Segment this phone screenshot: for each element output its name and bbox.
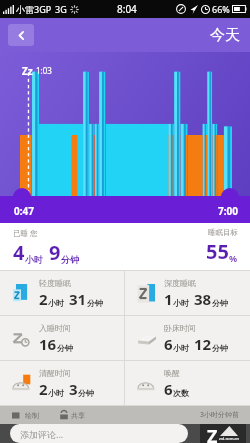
staticText: 12 [194,334,212,354]
staticText: 已睡 您 [13,228,38,238]
staticText: 小时 [48,388,64,398]
staticText: 1:03 [36,65,52,76]
staticText: 睡眠目标 [208,228,238,237]
staticText: 38 [194,289,212,309]
staticText: 分钟 [57,343,73,353]
staticText: 分钟 [61,254,79,265]
staticText: 添加评论... [20,428,64,440]
staticText: 次数 [173,388,189,398]
staticText: 卧床时间 [164,323,196,333]
button[interactable]: 添加评论... [10,424,188,443]
button[interactable]: 卧床时间 [125,316,250,360]
staticText: 16 [39,334,57,354]
staticText: 1 [164,289,173,309]
staticText: 31 [69,289,87,309]
staticText: 9 [49,239,61,266]
staticText: 8:04 [117,2,137,16]
button[interactable]: 清醒时间 [0,361,124,405]
staticText: 3 [69,379,78,399]
staticText: 小时 [25,254,43,265]
staticText: 2 [39,379,48,399]
staticText: 分钟 [212,298,228,308]
staticText: 分钟 [212,343,228,353]
staticText: 小时 [173,343,189,353]
staticText: 绘制 [25,411,39,420]
staticText: 清醒时间 [39,368,71,378]
staticText: 分钟 [78,388,94,398]
button[interactable]: 轻度睡眠 [0,271,124,315]
staticText: 4 [13,239,25,266]
staticText: 小雷3GP [16,3,52,15]
staticText: 0:47 [14,204,34,218]
staticText: 6 [164,334,173,354]
staticText: 小时 [48,298,64,308]
staticText: Zz [22,64,33,78]
staticText: 3G [55,3,67,15]
staticText: % [229,252,238,264]
staticText: 6 [164,379,173,399]
button[interactable]: 入睡时间 [0,316,124,360]
staticText: 轻度睡眠 [39,278,71,288]
button[interactable]: 共享 [57,410,87,420]
staticText: 3小时分钟前 [200,410,240,420]
staticText: 深度睡眠 [164,278,196,288]
button[interactable]: 唤醒 [125,361,250,405]
staticText: 小时 [173,298,189,308]
staticText: 2 [39,289,48,309]
staticText: 今天 [210,26,240,45]
staticText: 唤醒 [164,368,180,378]
button[interactable]: Back [8,24,34,46]
staticText: 分钟 [87,298,103,308]
staticText: 7:00 [218,204,238,218]
staticText: 66% [212,3,230,15]
button[interactable]: 深度睡眠 [125,271,250,315]
staticText: 55 [206,238,229,265]
staticText: Z [207,424,218,443]
staticText: zol.com.cn [219,436,239,441]
button[interactable]: 绘制 [10,410,41,421]
staticText: 共享 [71,411,85,420]
staticText: 入睡时间 [39,323,71,333]
button[interactable]: ZOL watermark [200,424,246,443]
